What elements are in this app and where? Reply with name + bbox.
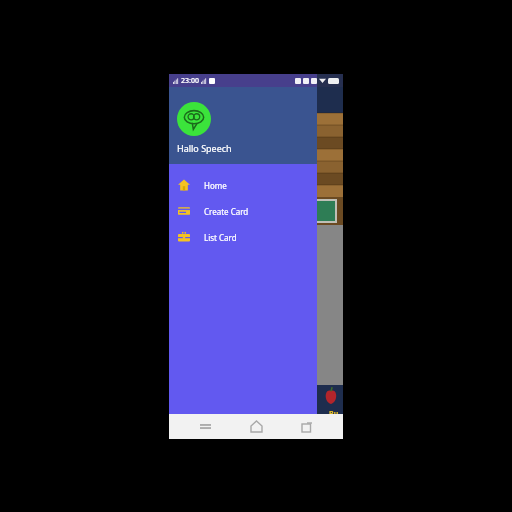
staticText: List Card xyxy=(204,232,237,243)
button[interactable]: Recents xyxy=(190,414,220,439)
staticText: Home xyxy=(204,180,227,191)
staticText: 23:00 xyxy=(181,76,199,86)
button[interactable]: Home xyxy=(241,414,271,439)
button[interactable]: Home xyxy=(169,172,317,198)
button[interactable]: Back xyxy=(292,414,322,439)
staticText: Hallo Speech xyxy=(177,142,232,154)
staticText: Bu xyxy=(329,409,339,419)
button[interactable]: Profile avatar xyxy=(177,102,211,136)
button[interactable]: List Card xyxy=(169,224,317,250)
staticText: Create Card xyxy=(204,206,249,217)
button[interactable]: Create Card xyxy=(169,198,317,224)
